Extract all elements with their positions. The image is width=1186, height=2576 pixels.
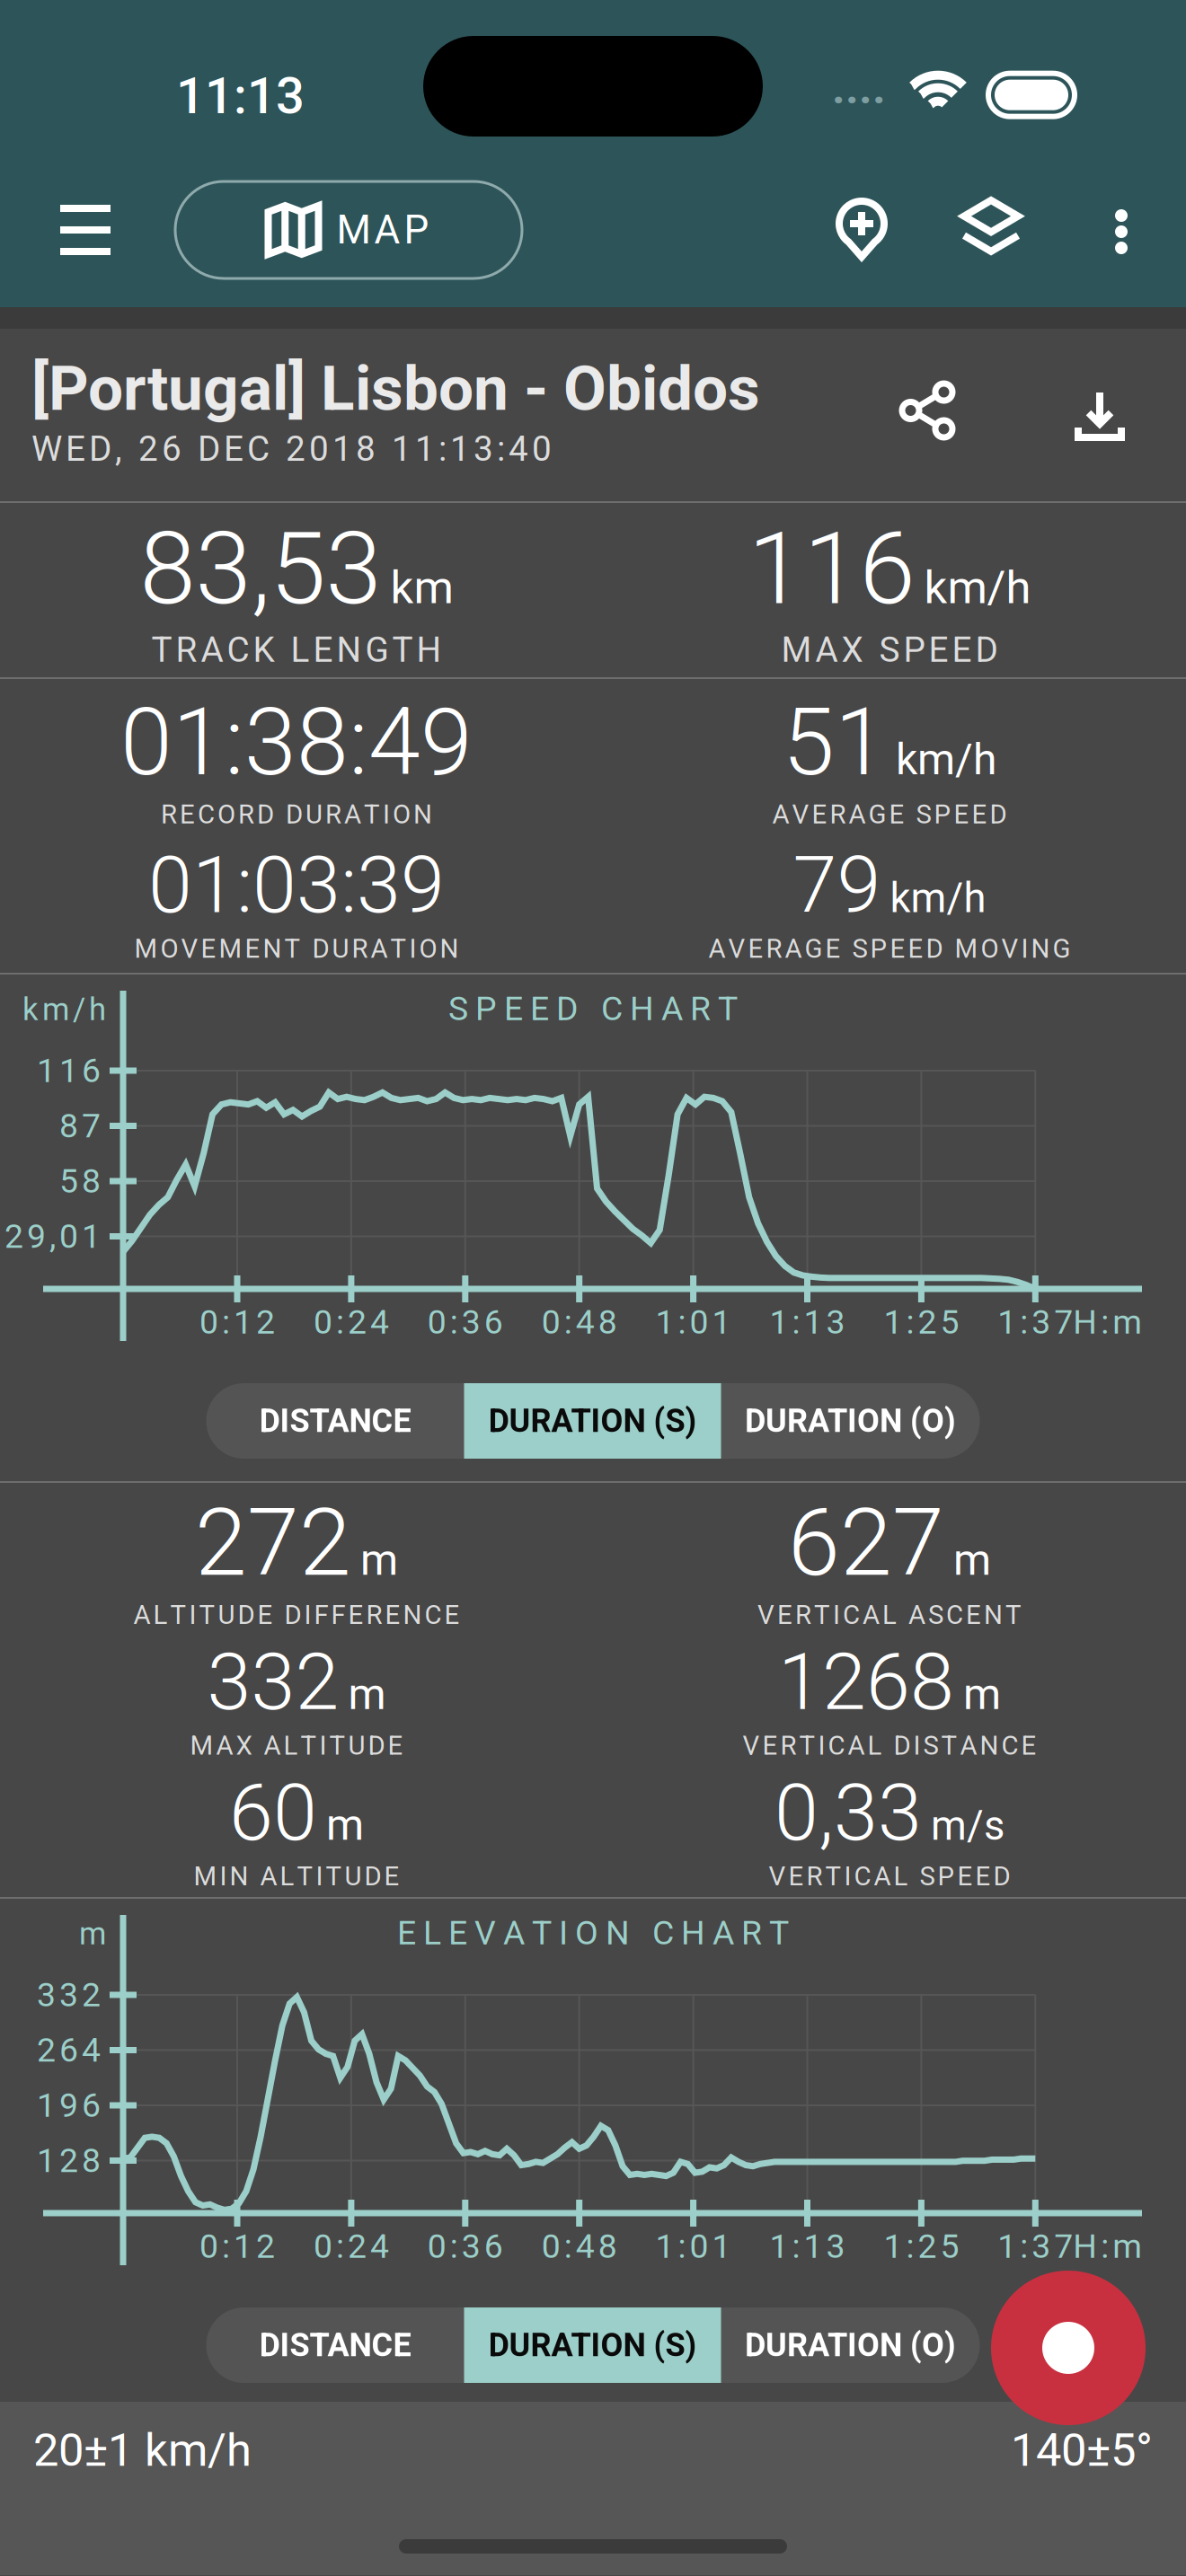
- staticText: 0 : 1 2: [199, 1302, 275, 1342]
- staticText: V E R T I C A L A S C E N T: [757, 1599, 1022, 1630]
- staticText: 1268: [778, 1636, 954, 1728]
- staticText: M A P: [336, 207, 429, 253]
- staticText: 140±5°: [1011, 2424, 1153, 2477]
- button[interactable]: DURATION (S): [464, 1383, 721, 1459]
- button[interactable]: Add point: [812, 180, 911, 278]
- staticText: 0 : 3 6: [427, 2227, 503, 2266]
- staticText: 79: [793, 839, 881, 931]
- button[interactable]: DISTANCE: [206, 1383, 464, 1459]
- button[interactable]: Menu: [36, 181, 135, 279]
- staticText: A L T I T U D E D I F F E R E N C E: [133, 1599, 460, 1630]
- staticText: DURATION (O): [745, 2326, 956, 2364]
- staticText: m/s: [931, 1802, 1005, 1850]
- staticText: 20±1 km/h: [33, 2424, 252, 2477]
- button[interactable]: DURATION (S): [464, 2307, 721, 2383]
- staticText: DISTANCE: [259, 1402, 411, 1440]
- staticText: E L E V A T I O N C H A R T: [397, 1913, 789, 1952]
- button[interactable]: Layers: [942, 178, 1040, 277]
- staticText: km: [390, 561, 453, 614]
- staticText: DURATION (S): [488, 2326, 697, 2364]
- staticText: DISTANCE: [259, 2326, 411, 2364]
- staticText: 0 : 3 6: [427, 1302, 503, 1342]
- staticText: 1 : 2 5: [884, 1302, 959, 1342]
- button[interactable]: DISTANCE: [206, 2307, 464, 2383]
- staticText: 272: [195, 1488, 351, 1598]
- staticText: m: [953, 1535, 991, 1585]
- staticText: km/h: [924, 561, 1031, 614]
- staticText: 01:38:49: [120, 688, 473, 797]
- staticText: T R A C K L E N G T H: [151, 630, 442, 670]
- staticText: [Portugal] Lisbon - Obidos: [31, 352, 760, 425]
- staticText: m: [79, 1916, 106, 1952]
- staticText: 3 3 2: [37, 1975, 101, 2014]
- staticText: 1 9 6: [37, 2086, 101, 2125]
- staticText: ....: [832, 61, 886, 114]
- staticText: 627: [788, 1488, 944, 1598]
- button[interactable]: Download: [1046, 361, 1154, 469]
- staticText: A V E R A G E S P E E D M O V I N G: [708, 933, 1071, 964]
- staticText: 11:13: [176, 66, 305, 125]
- staticText: 1 : 3 7: [998, 2227, 1073, 2266]
- staticText: 1 : 2 5: [884, 2227, 959, 2266]
- staticText: A V E R A G E S P E E D: [772, 799, 1007, 830]
- staticText: 1 : 0 1: [656, 2227, 731, 2266]
- staticText: M A X A L T I T U D E: [190, 1730, 403, 1761]
- staticText: M O V E M E N T D U R A T I O N: [134, 933, 459, 964]
- staticText: M A X S P E E D: [781, 630, 998, 670]
- staticText: W E D , 2 6 D E C 2 0 1 8 1 1 : 1 3 : 4 …: [31, 429, 552, 469]
- staticText: 2 6 4: [37, 2030, 101, 2070]
- button[interactable]: Share: [873, 357, 981, 464]
- staticText: 0 : 2 4: [313, 1302, 389, 1342]
- button[interactable]: DURATION (O): [721, 1383, 980, 1459]
- staticText: m: [360, 1535, 398, 1585]
- staticText: 0,33: [774, 1766, 922, 1859]
- staticText: km/h: [890, 874, 986, 922]
- button[interactable]: Record: [991, 2271, 1146, 2425]
- staticText: H : m: [1073, 1302, 1142, 1342]
- staticText: 0 : 4 8: [542, 2227, 617, 2266]
- staticText: V E R T I C A L D I S T A N C E: [743, 1730, 1036, 1761]
- staticText: 01:03:39: [148, 839, 445, 931]
- staticText: 1 : 3 7: [998, 1302, 1073, 1342]
- staticText: 332: [207, 1636, 339, 1728]
- staticText: 0 : 4 8: [542, 1302, 617, 1342]
- staticText: 1 : 0 1: [656, 1302, 731, 1342]
- staticText: 1 : 1 3: [770, 1302, 845, 1342]
- staticText: 83,53: [140, 510, 381, 628]
- staticText: R E C O R D D U R A T I O N: [161, 799, 432, 830]
- staticText: 5 8: [59, 1161, 101, 1201]
- staticText: 60: [229, 1766, 317, 1859]
- staticText: V E R T I C A L S P E E D: [769, 1861, 1010, 1892]
- staticText: S P E E D C H A R T: [448, 989, 738, 1028]
- staticText: 0 : 1 2: [199, 2227, 275, 2266]
- staticText: km/h: [896, 734, 996, 785]
- staticText: 1 1 6: [37, 1051, 101, 1090]
- staticText: DURATION (O): [745, 1402, 956, 1440]
- staticText: m: [326, 1800, 364, 1850]
- staticText: 1 2 8: [37, 2141, 101, 2180]
- button[interactable]: More options: [1072, 182, 1171, 281]
- staticText: 8 7: [59, 1106, 101, 1145]
- button[interactable]: M A P: [175, 181, 522, 278]
- staticText: DURATION (S): [488, 1402, 697, 1440]
- staticText: m: [963, 1669, 1001, 1719]
- staticText: 51: [783, 688, 887, 797]
- staticText: 116: [748, 510, 915, 628]
- staticText: H : m: [1073, 2227, 1142, 2266]
- staticText: k m / h: [22, 991, 106, 1028]
- staticText: 2 9 , 0 1: [4, 1217, 101, 1256]
- button[interactable]: DURATION (O): [721, 2307, 980, 2383]
- staticText: M I N A L T I T U D E: [194, 1861, 399, 1892]
- staticText: m: [348, 1669, 386, 1719]
- staticText: 0 : 2 4: [313, 2227, 389, 2266]
- staticText: 1 : 1 3: [770, 2227, 845, 2266]
